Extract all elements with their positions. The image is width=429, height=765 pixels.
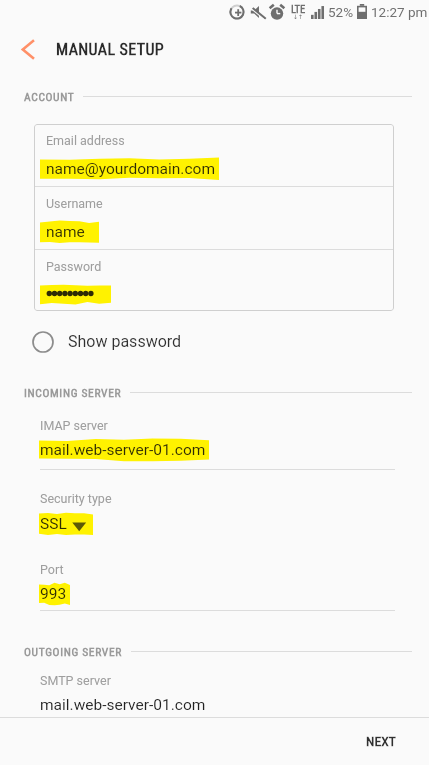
staticText: INCOMING SERVER — [24, 386, 122, 399]
button[interactable]: IMAP server — [40, 418, 395, 460]
staticText: NEXT — [366, 733, 396, 749]
staticText: 993 — [40, 585, 67, 603]
staticText: name — [46, 223, 85, 241]
staticText: 52% — [328, 4, 354, 20]
staticText: 12:27 pm — [371, 4, 428, 20]
button[interactable]: Password — [34, 250, 394, 311]
button[interactable]: Email address — [34, 124, 394, 186]
staticText: OUTGOING SERVER — [24, 645, 123, 658]
staticText: name@yourdomain.com — [46, 160, 216, 178]
staticText: mail.web-server-01.com — [40, 441, 206, 459]
staticText: SSL — [40, 515, 67, 533]
button[interactable]: SMTP server — [40, 673, 395, 715]
staticText: mail.web-server-01.com — [40, 696, 206, 714]
staticText: Show password — [68, 332, 182, 351]
staticText: SMTP server — [40, 673, 111, 688]
staticText: Username — [46, 196, 103, 211]
button[interactable]: Security type — [40, 491, 395, 535]
staticText: MANUAL SETUP — [56, 40, 165, 59]
button[interactable]: Show password — [32, 326, 252, 357]
button[interactable]: Username — [34, 187, 394, 249]
button[interactable]: Back — [4, 26, 50, 72]
button[interactable]: Port — [40, 562, 395, 604]
staticText: Port — [40, 562, 64, 577]
staticText: Security type — [40, 491, 112, 506]
staticText: Email address — [46, 133, 125, 148]
staticText: LTE — [291, 3, 306, 15]
button[interactable]: NEXT — [345, 718, 429, 765]
staticText: Password — [46, 259, 102, 274]
staticText: IMAP server — [40, 418, 108, 433]
staticText: ACCOUNT — [24, 90, 75, 103]
staticText: ↓↑ — [293, 13, 304, 20]
